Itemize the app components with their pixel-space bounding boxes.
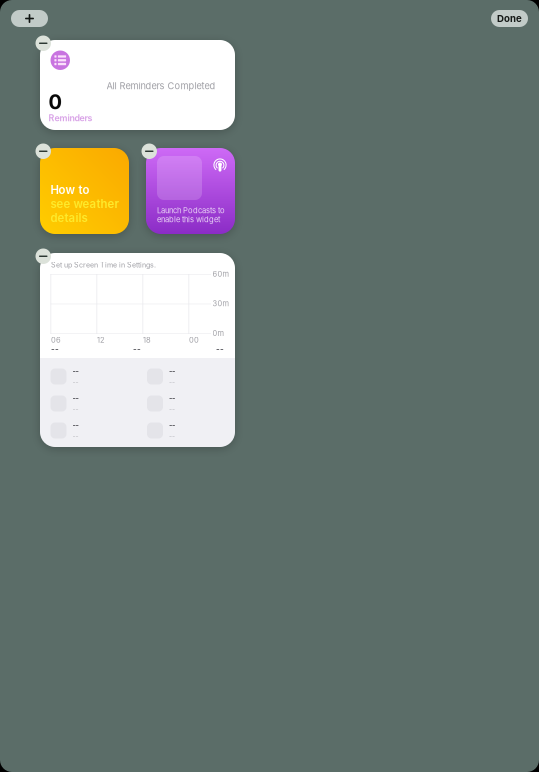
staticText: -- <box>72 432 78 440</box>
staticText: -- <box>72 394 78 403</box>
staticText: -- <box>169 367 175 376</box>
staticText: Reminders <box>48 113 92 123</box>
staticText: details <box>50 211 87 225</box>
staticText: How to <box>50 183 89 197</box>
button[interactable]: Remove widget <box>35 248 51 264</box>
staticText: 0 <box>48 90 61 114</box>
staticText: 30m <box>212 299 229 308</box>
staticText: -- <box>216 344 224 354</box>
staticText: 00 <box>189 335 199 344</box>
staticText: All Reminders Completed <box>106 80 215 91</box>
staticText: 0m <box>212 329 224 338</box>
staticText: enable this widget <box>157 215 220 224</box>
staticText: see weather <box>50 197 118 211</box>
staticText: Launch Podcasts to <box>157 206 225 215</box>
staticText: -- <box>51 344 59 354</box>
staticText: -- <box>169 432 175 440</box>
button[interactable]: All Reminders Completed <box>40 40 235 130</box>
staticText: 12 <box>97 335 105 344</box>
button[interactable]: Remove widget <box>35 143 51 159</box>
button[interactable]: Done <box>491 10 528 27</box>
staticText: -- <box>169 405 175 413</box>
staticText: -- <box>133 344 141 354</box>
button[interactable]: Launch Podcasts to <box>146 148 235 234</box>
staticText: -- <box>72 378 78 386</box>
staticText: -- <box>72 421 78 430</box>
staticText: -- <box>169 394 175 403</box>
staticText: 60m <box>212 269 229 278</box>
staticText: -- <box>169 421 175 430</box>
staticText: Set up Screen Time in Settings. <box>51 261 156 269</box>
button[interactable]: Remove widget <box>141 143 157 159</box>
button[interactable]: Remove widget <box>35 35 51 51</box>
staticText: -- <box>169 378 175 386</box>
button[interactable]: Set up Screen Time in Settings. <box>40 253 235 447</box>
staticText: -- <box>72 367 78 376</box>
button[interactable]: How to <box>40 148 129 234</box>
button[interactable]: Add widget <box>11 10 48 27</box>
staticText: 06 <box>51 335 61 344</box>
staticText: -- <box>72 405 78 413</box>
staticText: Done <box>497 13 522 24</box>
staticText: 18 <box>143 335 151 344</box>
